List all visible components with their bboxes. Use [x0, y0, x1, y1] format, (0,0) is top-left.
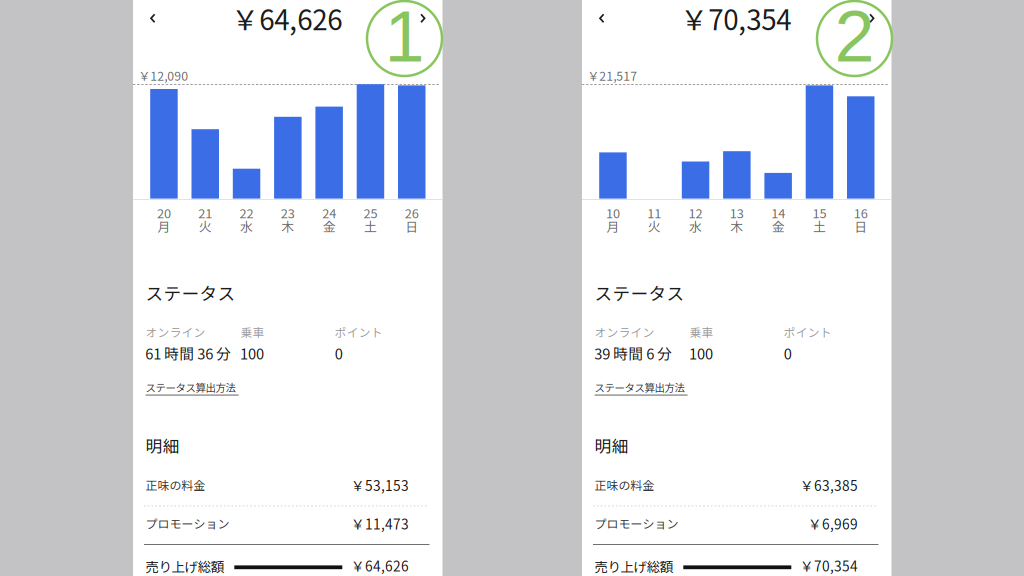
staticText: 売り上げ総額	[594, 556, 672, 576]
staticText: ￥12,090	[138, 66, 188, 84]
staticText: ￥53,153	[351, 475, 409, 495]
staticText: 火	[199, 217, 212, 235]
staticText: 明細	[146, 433, 180, 457]
staticText: 水	[240, 217, 253, 235]
staticText: 100	[240, 343, 264, 364]
staticText: 10	[606, 203, 620, 222]
staticText: 木	[730, 217, 743, 235]
staticText: 乗車	[240, 323, 264, 340]
staticText: 水	[689, 217, 702, 235]
staticText: 土	[364, 217, 377, 235]
staticText: ￥70,354	[800, 555, 858, 575]
staticText: 14	[771, 203, 785, 222]
staticText: 0	[335, 343, 343, 364]
staticText: ステータス	[595, 280, 685, 305]
staticText: 金	[323, 217, 336, 235]
staticText: 11	[647, 203, 661, 222]
staticText: 月	[606, 217, 619, 235]
staticText: ￥6,969	[808, 513, 858, 533]
staticText: ステータス算出方法	[595, 380, 685, 395]
staticText: ￥70,354	[680, 0, 791, 38]
staticText: ステータス	[146, 280, 236, 305]
staticText: ￥21,517	[587, 66, 637, 84]
staticText: オンライン	[146, 323, 206, 340]
staticText: ￥64,626	[231, 0, 342, 38]
staticText: ポイント	[784, 323, 832, 340]
staticText: 乗車	[689, 323, 713, 340]
staticText: 1	[384, 0, 424, 77]
staticText: 13	[730, 203, 744, 222]
staticText: 金	[772, 217, 785, 235]
staticText: 61 時間 36 分	[145, 343, 231, 364]
staticText: 2	[834, 0, 874, 77]
button[interactable]: ステータス算出方法	[146, 380, 239, 395]
staticText: 12	[688, 203, 702, 222]
button[interactable]: ステータス算出方法	[595, 380, 688, 395]
button[interactable]: Next week	[859, 5, 885, 31]
staticText: プロモーション	[146, 514, 230, 532]
staticText: 土	[813, 217, 826, 235]
staticText: 月	[157, 217, 170, 235]
staticText: 26	[405, 203, 419, 222]
staticText: 火	[648, 217, 661, 235]
staticText: 木	[281, 217, 294, 235]
staticText: 0	[784, 343, 792, 364]
staticText: 正味の料金	[146, 476, 206, 493]
button[interactable]: Previous week	[140, 5, 166, 31]
staticText: 日	[854, 217, 867, 235]
staticText: 22	[240, 203, 254, 222]
button[interactable]: Previous week	[589, 5, 615, 31]
staticText: 24	[322, 203, 336, 222]
staticText: プロモーション	[595, 514, 679, 532]
staticText: 21	[198, 203, 212, 222]
staticText: 25	[363, 203, 377, 222]
staticText: ポイント	[335, 323, 383, 340]
staticText: 正味の料金	[595, 476, 655, 493]
staticText: 100	[689, 343, 713, 364]
staticText: 明細	[595, 433, 629, 457]
staticText: ￥64,626	[351, 555, 409, 575]
button[interactable]: Next week	[410, 5, 436, 31]
staticText: 日	[405, 217, 418, 235]
staticText: 15	[812, 203, 826, 222]
staticText: 20	[157, 203, 171, 222]
staticText: 売り上げ総額	[145, 556, 223, 576]
staticText: 23	[281, 203, 295, 222]
staticText: ￥63,385	[800, 475, 858, 495]
staticText: ステータス算出方法	[146, 380, 236, 395]
staticText: 39 時間 6 分	[594, 343, 672, 364]
staticText: オンライン	[595, 323, 655, 340]
staticText: ￥11,473	[351, 513, 409, 533]
staticText: 16	[854, 203, 868, 222]
